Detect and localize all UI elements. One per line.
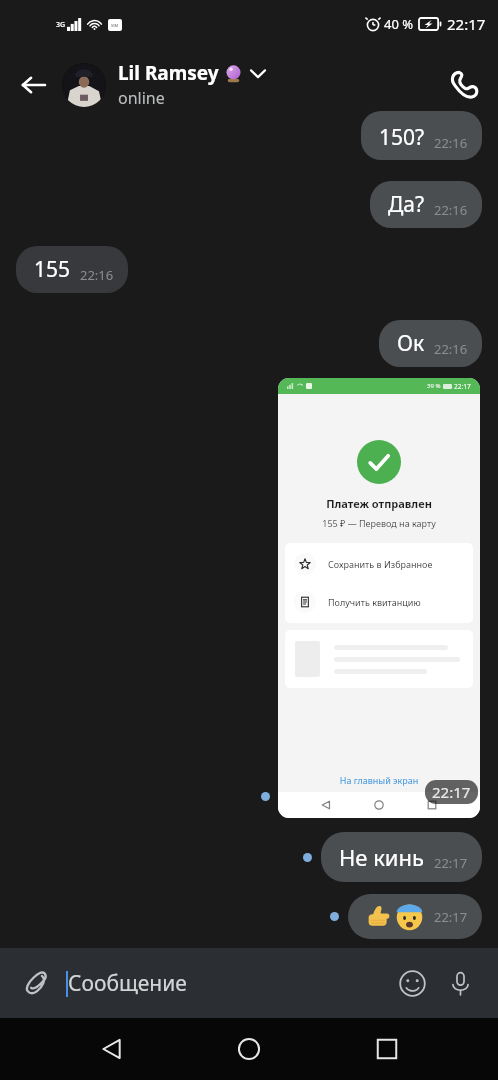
staticText: 3G <box>56 20 66 30</box>
staticText: online <box>118 87 165 109</box>
staticText: 22:16 <box>434 201 468 219</box>
button[interactable]: 22:17 <box>348 894 482 939</box>
button[interactable]: Lil Ramsey <box>62 60 440 109</box>
button[interactable]: Home <box>223 1023 275 1075</box>
staticText: Lil Ramsey <box>118 60 219 86</box>
button[interactable]: Ок <box>379 320 482 367</box>
staticText: Да? <box>388 190 425 219</box>
staticText: 155 <box>34 255 71 284</box>
button[interactable]: Voice message <box>438 961 482 1005</box>
button[interactable]: Emoji <box>390 961 434 1005</box>
staticText: 40 % <box>384 15 414 33</box>
button[interactable]: На главный экран <box>278 774 480 786</box>
button[interactable]: 150? <box>361 111 482 160</box>
staticText: 22:17 <box>432 782 471 802</box>
button[interactable]: Back <box>10 62 56 108</box>
staticText: 155 ₽ — Перевод на карту <box>278 517 480 529</box>
staticText: 22:16 <box>434 340 468 358</box>
staticText: 39 % <box>427 382 441 390</box>
button[interactable]: 155 <box>16 246 128 293</box>
staticText: Платеж отправлен <box>278 496 480 511</box>
staticText: 22:16 <box>80 266 114 284</box>
button[interactable]: Recent apps <box>361 1023 413 1075</box>
button[interactable]: 39 % <box>278 378 480 818</box>
button[interactable]: Сохранить в Избранное <box>285 548 473 580</box>
button[interactable]: Сообщение <box>66 969 390 998</box>
staticText: 150? <box>379 123 425 152</box>
staticText: Сообщение <box>68 969 187 998</box>
staticText: Получить квитанцию <box>328 596 421 608</box>
staticText: Сохранить в Избранное <box>328 558 433 570</box>
button[interactable]: Получить квитанцию <box>285 586 473 618</box>
button[interactable]: Attach <box>16 963 56 1003</box>
button[interactable]: Не кинь <box>321 832 482 882</box>
staticText: Не кинь <box>339 842 425 872</box>
staticText: 22:17 <box>454 382 471 391</box>
button[interactable]: Call <box>440 61 488 109</box>
button[interactable]: Back <box>86 1023 138 1075</box>
staticText: Ок <box>397 329 425 358</box>
staticText: 22:17 <box>447 14 486 34</box>
staticText: SIM <box>111 23 119 28</box>
staticText: 22:17 <box>434 854 468 872</box>
button[interactable]: Да? <box>370 181 482 228</box>
staticText: 22:16 <box>434 134 468 152</box>
staticText: 22:17 <box>434 908 468 926</box>
